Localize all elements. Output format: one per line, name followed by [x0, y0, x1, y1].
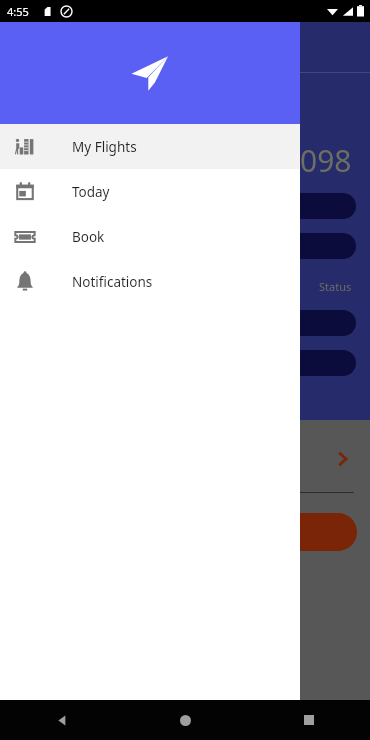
staticText: Book [72, 228, 105, 246]
staticText: My Flights [72, 138, 137, 156]
staticText: Today [72, 183, 110, 201]
button[interactable]: Recent apps [247, 700, 370, 740]
button[interactable]: My Flights [0, 124, 300, 169]
button[interactable]: Book [0, 214, 300, 259]
staticText: 098 [300, 140, 352, 181]
button[interactable]: Notifications [0, 259, 300, 304]
button[interactable]: Today [0, 169, 300, 214]
button[interactable] [207, 513, 357, 551]
staticText: Notifications [72, 273, 153, 291]
button[interactable]: Back [0, 700, 124, 740]
button[interactable]: Open details [330, 446, 356, 472]
staticText: Status [319, 279, 352, 294]
button[interactable]: Home [124, 700, 247, 740]
staticText: 4:55 [7, 4, 29, 19]
